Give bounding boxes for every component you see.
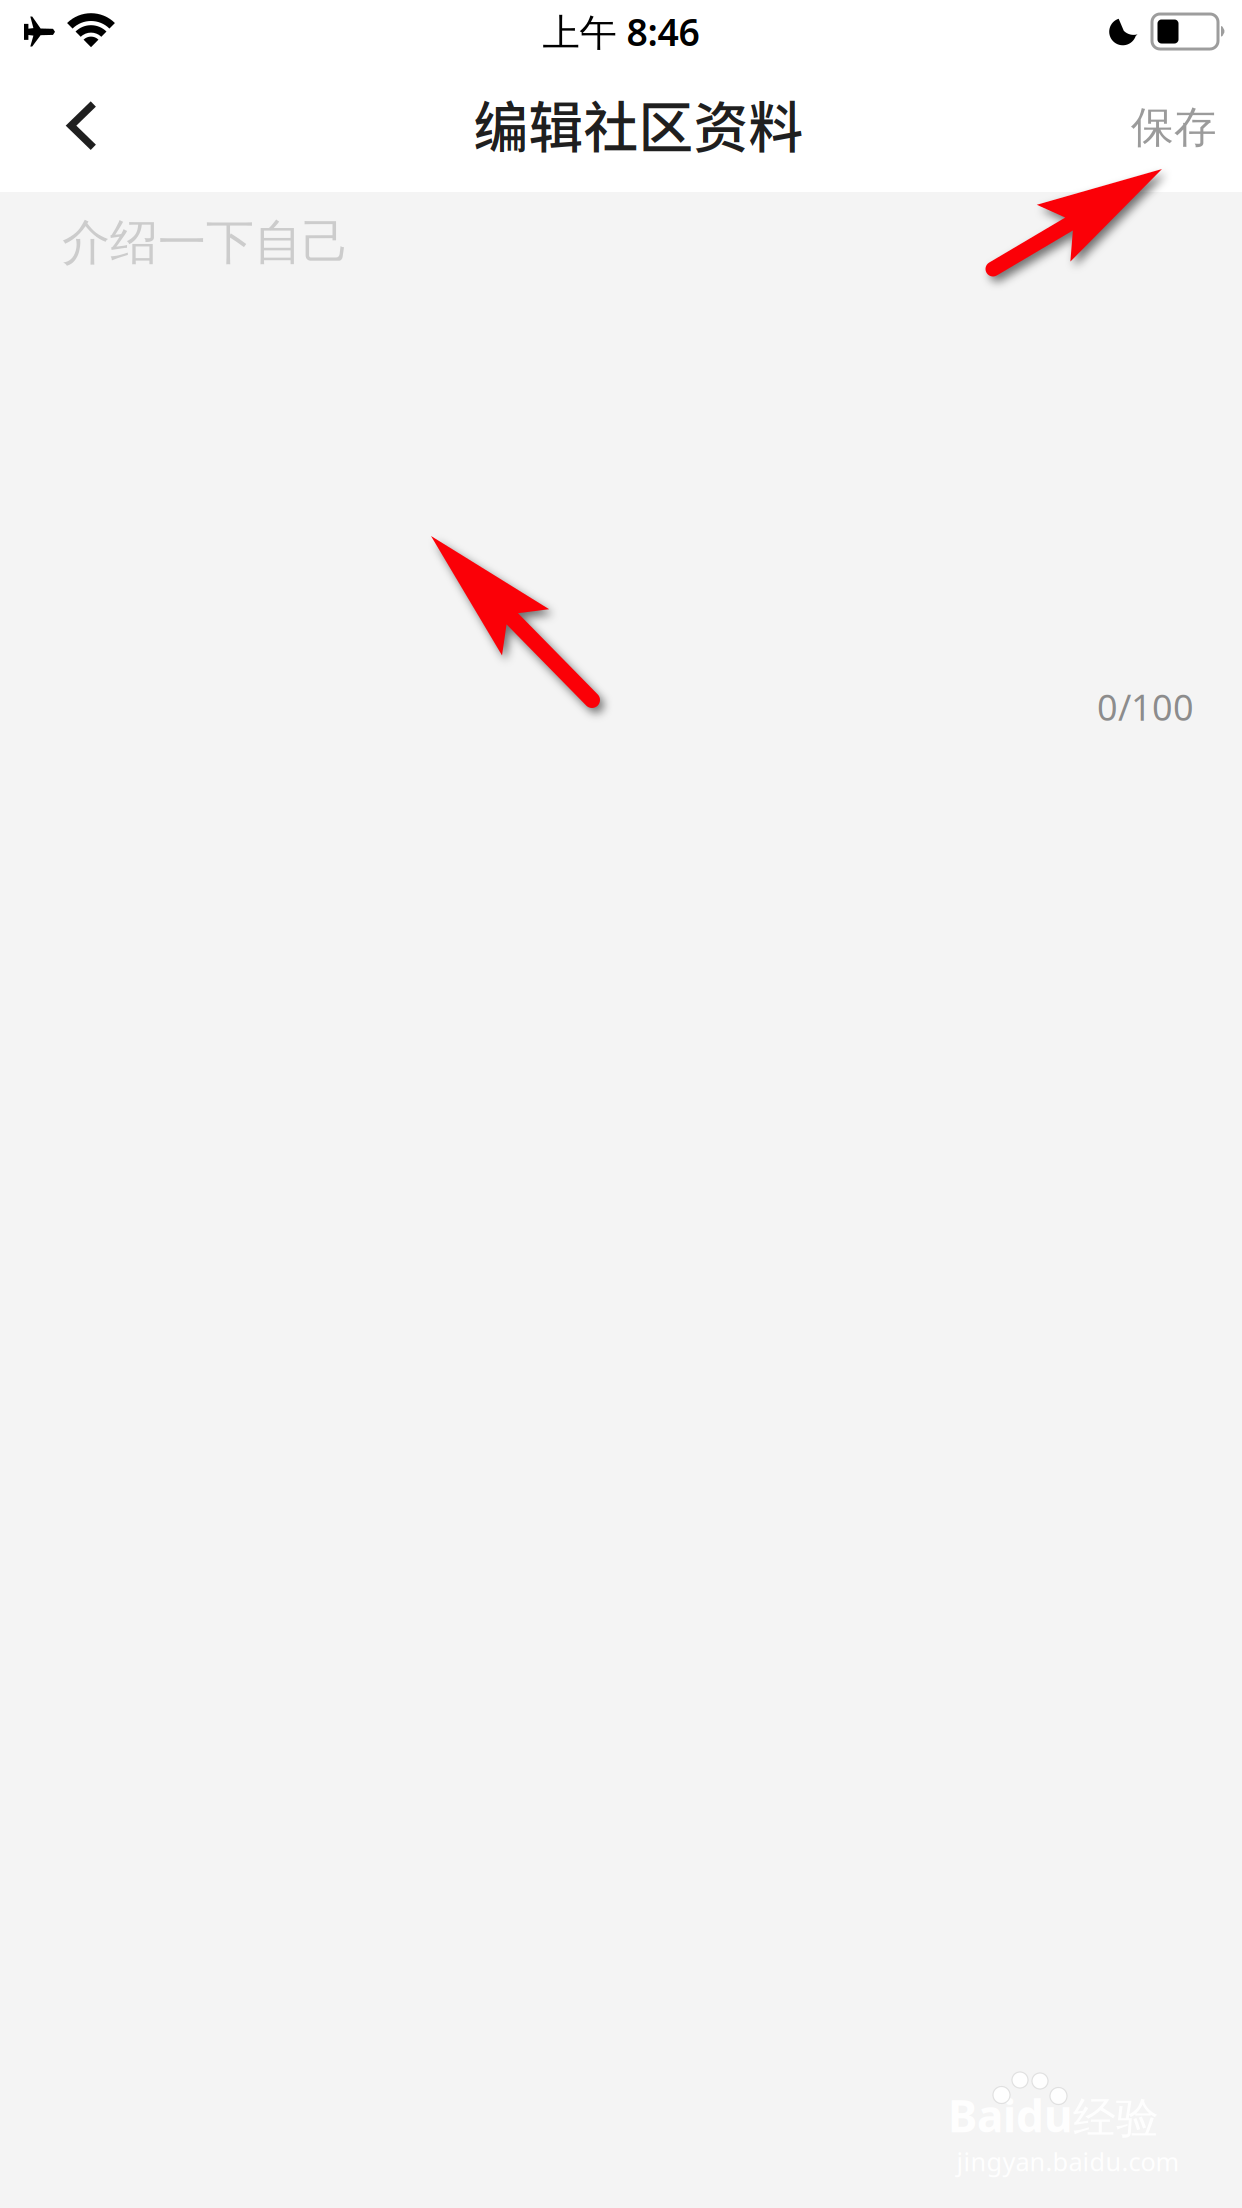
- staticText: 介绍一下自己: [62, 213, 350, 272]
- staticText: jingyan.baidu.com: [956, 2144, 1179, 2178]
- staticText: 0/100: [1097, 683, 1194, 731]
- staticText: 经验: [1073, 2092, 1159, 2144]
- staticText: Baidu: [948, 2086, 1073, 2144]
- button[interactable]: 保存: [1062, 63, 1242, 192]
- staticText: 保存: [1131, 101, 1217, 154]
- button[interactable]: 介绍一下自己: [0, 192, 1242, 2208]
- staticText: 上午 8:46: [542, 7, 699, 56]
- button[interactable]: 返回: [0, 63, 160, 192]
- staticText: 编辑社区资料: [473, 85, 803, 162]
